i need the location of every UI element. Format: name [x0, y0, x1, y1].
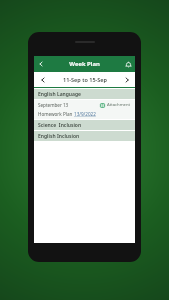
button[interactable]: Back — [34, 57, 48, 71]
staticText: 11-Sep to 15-Sep — [63, 76, 107, 83]
staticText: Week Plan — [69, 60, 100, 68]
staticText: English Language — [38, 91, 82, 98]
button[interactable]: September 13 — [34, 100, 135, 119]
button[interactable]: English Language — [34, 89, 135, 99]
button[interactable]: Next week — [120, 73, 133, 86]
button[interactable]: Previous week — [36, 73, 49, 86]
staticText: September 13 — [38, 102, 69, 108]
staticText: English Inclusion — [38, 133, 80, 140]
staticText: Homework Plan — [38, 111, 74, 117]
staticText: Science Inclusion — [38, 122, 82, 129]
button[interactable]: Science Inclusion — [34, 120, 135, 130]
button[interactable]: Notifications — [121, 57, 135, 71]
staticText: Attachment — [107, 102, 131, 108]
button[interactable]: English Inclusion — [34, 131, 135, 141]
staticText: 13/9/2022 — [74, 111, 96, 117]
